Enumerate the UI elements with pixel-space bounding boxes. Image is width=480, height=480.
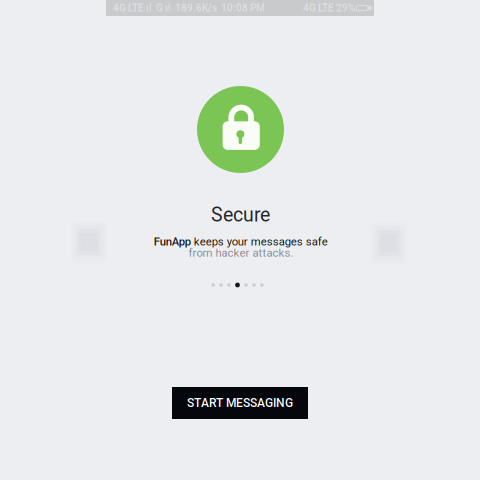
staticText: 4G LTE 29% (303, 2, 355, 14)
staticText: Secure (211, 203, 270, 226)
staticText: START MESSAGING (187, 396, 293, 410)
staticText: from hacker attacks. (188, 246, 293, 260)
staticText: FunApp keeps your messages safe (154, 235, 328, 248)
button[interactable]: START MESSAGING (172, 387, 308, 419)
staticText: 4G LTE ıl G ıl 189.6K/s 10:08 PM (113, 2, 265, 14)
